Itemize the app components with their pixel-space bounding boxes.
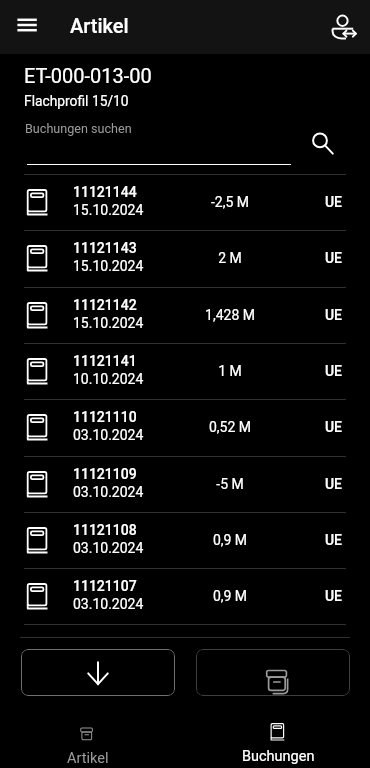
staticText: 1 M <box>170 363 290 379</box>
button[interactable]: 11121108 <box>0 512 370 568</box>
button[interactable]: Book in <box>196 649 350 696</box>
staticText: UE <box>310 307 357 323</box>
staticText: 03.10.2024 <box>73 596 144 612</box>
staticText: 11121141 <box>73 353 137 369</box>
button[interactable]: Book out <box>21 649 175 696</box>
button[interactable]: 11121141 <box>0 343 370 399</box>
staticText: 11121107 <box>73 578 137 594</box>
staticText: 0,9 M <box>170 532 290 548</box>
staticText: UE <box>310 532 357 548</box>
staticText: -2,5 M <box>170 194 290 210</box>
button[interactable]: 11121107 <box>0 568 370 624</box>
button[interactable]: Buchungen <box>213 718 343 766</box>
staticText: Buchungen <box>242 748 315 765</box>
staticText: UE <box>310 250 357 266</box>
button[interactable]: Search <box>305 127 341 163</box>
staticText: 11121109 <box>73 466 137 482</box>
staticText: Flachprofil 15/10 <box>24 93 129 109</box>
button[interactable]: 11121143 <box>0 230 370 286</box>
staticText: UE <box>310 363 357 379</box>
staticText: UE <box>310 419 357 435</box>
button[interactable]: Open navigation menu <box>7 6 47 46</box>
staticText: UE <box>310 476 357 492</box>
staticText: UE <box>310 588 357 604</box>
button[interactable]: 11121142 <box>0 287 370 343</box>
staticText: UE <box>310 194 357 210</box>
staticText: 0,52 M <box>170 419 290 435</box>
staticText: 11121144 <box>73 184 137 200</box>
staticText: 10.10.2024 <box>73 371 144 387</box>
button[interactable]: 11121144 <box>0 174 370 230</box>
button[interactable]: 11121109 <box>0 456 370 512</box>
button[interactable]: 11121110 <box>0 399 370 455</box>
staticText: 15.10.2024 <box>73 315 144 331</box>
staticText: 2 M <box>170 250 290 266</box>
staticText: -5 M <box>170 476 290 492</box>
staticText: 11121108 <box>73 522 137 538</box>
staticText: 15.10.2024 <box>73 202 144 218</box>
staticText: 03.10.2024 <box>73 484 144 500</box>
staticText: Artikel <box>67 750 109 766</box>
staticText: 03.10.2024 <box>73 540 144 556</box>
staticText: Buchungen suchen <box>25 121 132 136</box>
staticText: 11121143 <box>73 240 137 256</box>
staticText: 11121142 <box>73 297 137 313</box>
button[interactable]: Artikel <box>23 718 153 766</box>
staticText: Artikel <box>70 14 129 37</box>
staticText: 1,428 M <box>170 307 290 323</box>
staticText: 15.10.2024 <box>73 258 144 274</box>
staticText: ET-000-013-00 <box>24 64 152 87</box>
staticText: 0,9 M <box>170 588 290 604</box>
button[interactable]: Switch account <box>323 7 363 47</box>
staticText: 11121110 <box>73 409 137 425</box>
staticText: 03.10.2024 <box>73 427 144 443</box>
